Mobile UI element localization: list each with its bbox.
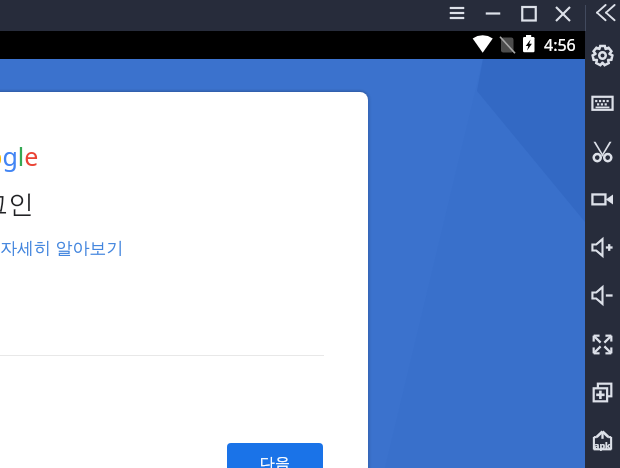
staticText: 로그인 (0, 188, 34, 221)
button[interactable]: Maximize (515, 0, 543, 31)
staticText: 다음 (260, 454, 290, 468)
button[interactable]: Volume down (585, 278, 620, 312)
staticText: apk (594, 439, 611, 451)
button[interactable]: Add instance (585, 375, 620, 409)
button[interactable]: Fullscreen (585, 327, 620, 361)
button[interactable]: Record screen (585, 182, 620, 216)
button[interactable]: Close (549, 0, 577, 31)
button[interactable]: 자세히 알아보기 (0, 236, 124, 259)
button[interactable]: Minimize (479, 0, 507, 31)
button[interactable]: Collapse sidebar (585, 0, 620, 31)
staticText: Google (0, 139, 39, 173)
button[interactable]: Install APK (585, 423, 620, 457)
staticText: 4:56 (544, 34, 576, 56)
staticText: 자세히 알아보기 (0, 236, 124, 259)
button[interactable]: Screenshot (585, 134, 620, 168)
button[interactable]: Volume up (585, 230, 620, 264)
button[interactable]: Keyboard (585, 86, 620, 120)
button[interactable]: 다음 (227, 443, 323, 468)
button[interactable]: Settings (585, 38, 620, 72)
button[interactable]: Menu (443, 0, 471, 31)
